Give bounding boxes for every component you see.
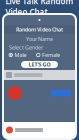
staticText: Random Video Chat xyxy=(16,26,63,33)
button[interactable]: Female xyxy=(36,51,60,59)
staticText: Select Gender xyxy=(9,44,43,51)
staticText: Female xyxy=(42,51,60,59)
button[interactable]: LET'S GO xyxy=(21,61,58,68)
button[interactable]: Male xyxy=(9,51,26,59)
staticText: Your Name xyxy=(26,35,53,43)
staticText: Male xyxy=(14,51,26,59)
staticText: Live Talk Random Video Chat xyxy=(5,0,73,17)
staticText: LET'S GO xyxy=(28,61,50,68)
